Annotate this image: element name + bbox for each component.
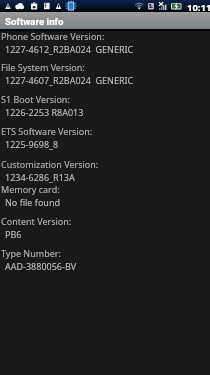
staticText: Phone Software Version: <box>1 30 105 42</box>
staticText: ETS Software Version: <box>1 125 93 137</box>
staticText: PB6 <box>5 228 22 240</box>
staticText: Content Version: <box>1 215 72 227</box>
staticText: 1225-9698_8 <box>5 138 59 150</box>
staticText: Memory card: <box>1 183 60 195</box>
staticText: Customization Version: <box>1 158 99 170</box>
staticText: 1234-6286_R13A <box>5 171 75 183</box>
staticText: 10:11 <box>187 1 210 13</box>
staticText: 1226-2253 R8A013 <box>5 106 84 118</box>
staticText: 1227-4612_R2BA024 GENERIC <box>5 43 134 55</box>
staticText: S1 Boot Version: <box>1 93 70 105</box>
staticText: Software info <box>5 16 64 27</box>
staticText: No file found <box>5 196 60 208</box>
staticText: AAD-3880056-BV <box>5 260 77 272</box>
staticText: File System Version: <box>1 61 85 73</box>
staticText: 1227-4607_R2BA024 GENERIC <box>5 74 134 86</box>
staticText: Type Number: <box>1 247 61 259</box>
